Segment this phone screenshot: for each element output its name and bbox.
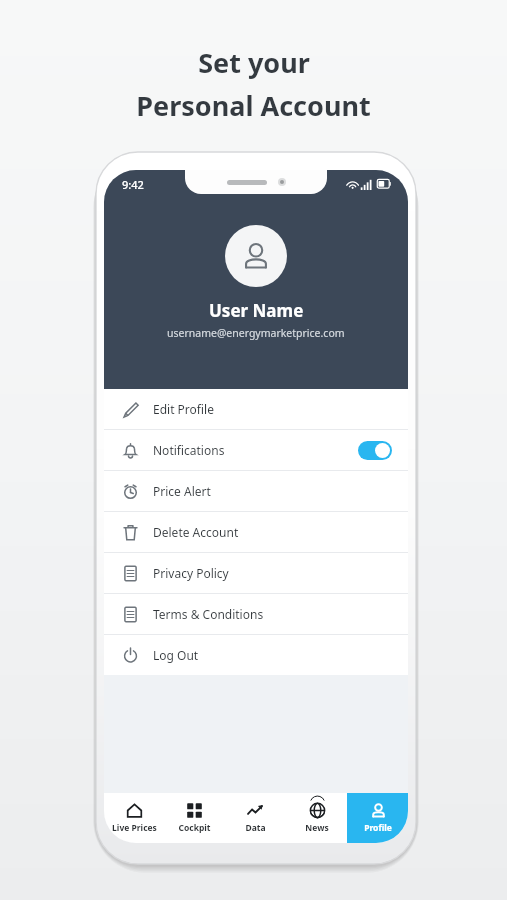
button[interactable]: Edit Profile: [104, 389, 408, 429]
button[interactable]: Data: [225, 793, 286, 843]
staticText: User Name: [209, 299, 304, 322]
button[interactable]: Profile: [347, 793, 408, 843]
staticText: Set your: [198, 44, 310, 81]
button[interactable]: Terms & Conditions: [104, 594, 408, 634]
staticText: Personal Account: [136, 87, 371, 124]
button[interactable]: Delete Account: [104, 512, 408, 552]
staticText: Log Out: [153, 647, 199, 663]
staticText: Data: [245, 822, 266, 834]
staticText: username@energymarketprice.com: [167, 326, 345, 340]
button[interactable]: Live Prices: [104, 793, 164, 843]
staticText: News: [305, 822, 329, 834]
staticText: Notifications: [153, 442, 225, 458]
staticText: Profile: [364, 822, 392, 834]
button[interactable]: Notifications: [104, 430, 408, 470]
staticText: Privacy Policy: [153, 565, 229, 581]
button[interactable]: Log Out: [104, 635, 408, 675]
button[interactable]: Notifications toggle: [358, 441, 392, 460]
staticText: Delete Account: [153, 524, 239, 540]
button[interactable]: Cockpit: [164, 793, 225, 843]
button[interactable]: News: [286, 793, 347, 843]
staticText: Edit Profile: [153, 401, 214, 417]
staticText: Live Prices: [112, 822, 157, 834]
button[interactable]: Price Alert: [104, 471, 408, 511]
staticText: 9:42: [122, 177, 144, 192]
button[interactable]: Privacy Policy: [104, 553, 408, 593]
staticText: Cockpit: [178, 822, 211, 834]
staticText: Terms & Conditions: [153, 606, 264, 622]
staticText: Price Alert: [153, 483, 211, 499]
